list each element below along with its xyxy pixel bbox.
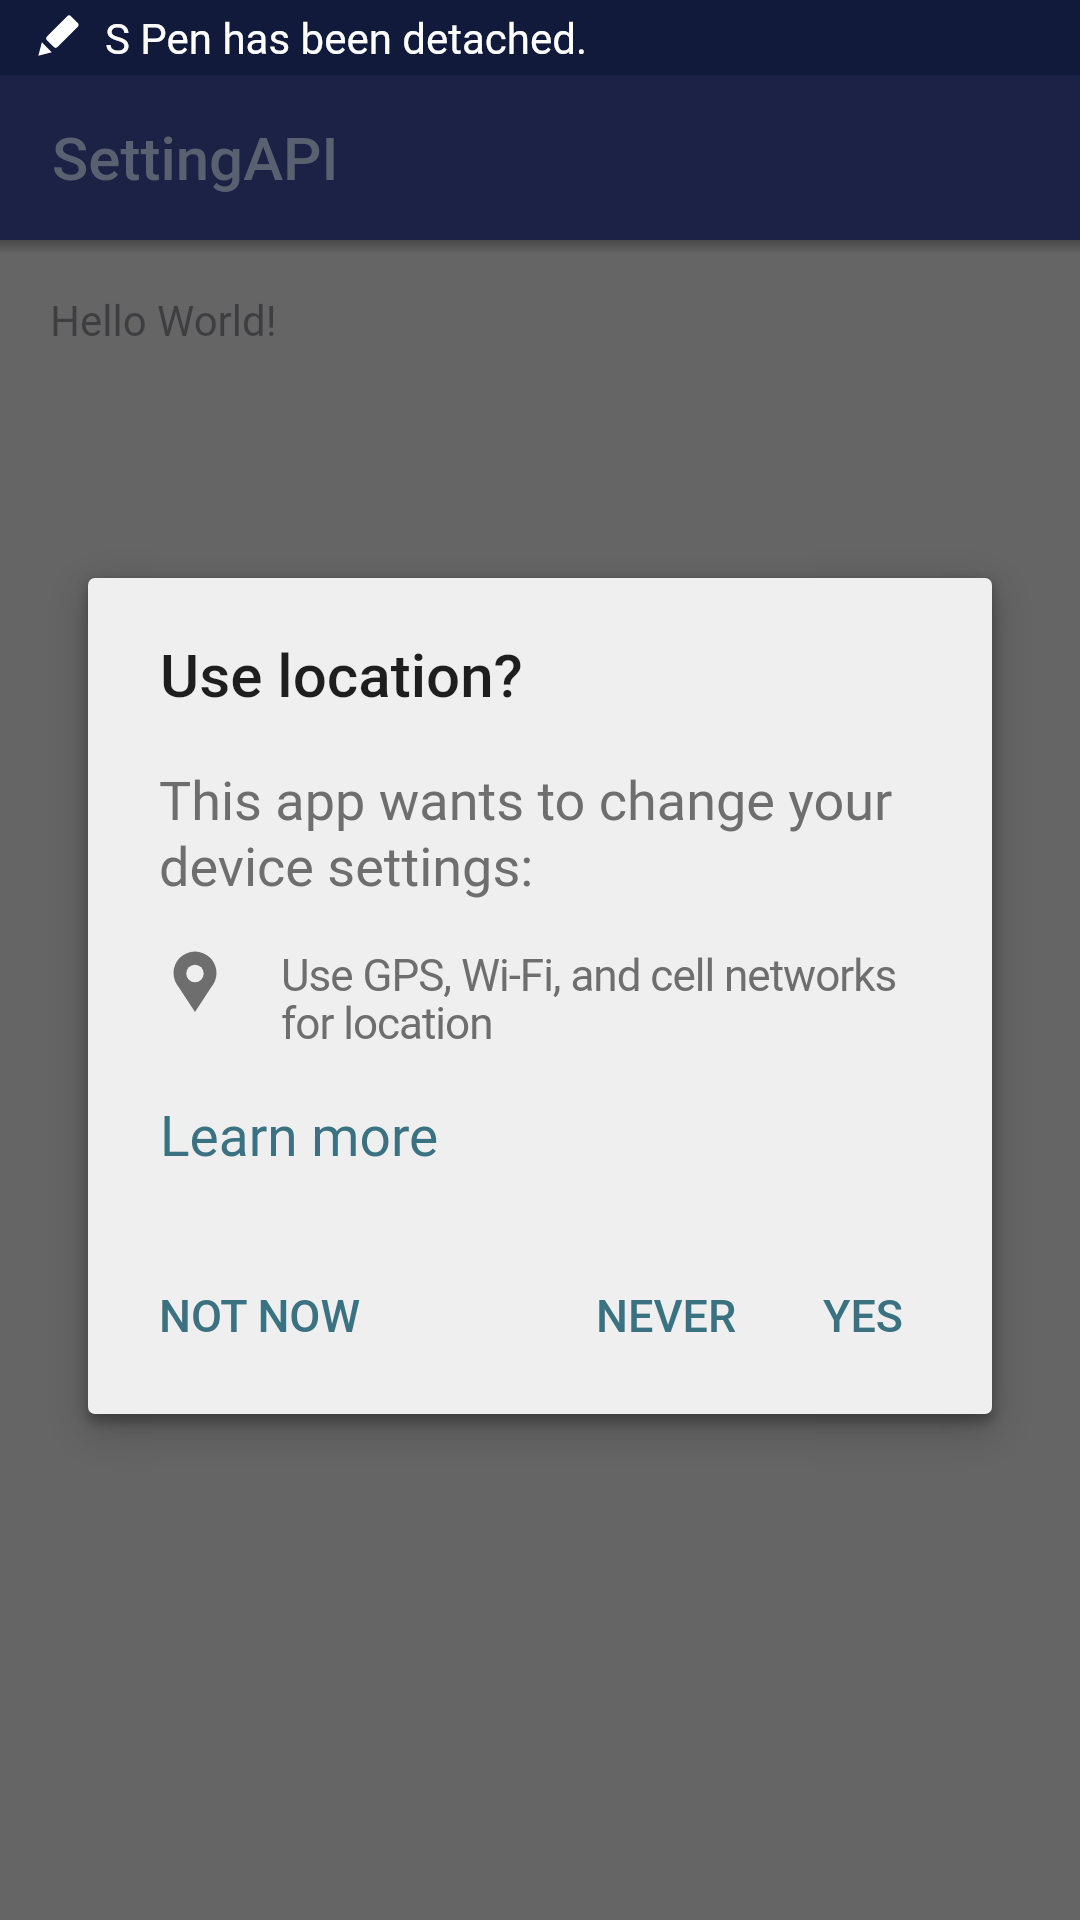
button[interactable]: YES <box>799 1258 968 1366</box>
staticText: NEVER <box>596 1290 737 1343</box>
button[interactable]: NEVER <box>572 1258 792 1366</box>
staticText: SettingAPI <box>52 124 339 194</box>
staticText: Use location? <box>160 641 523 711</box>
staticText: Use GPS, Wi-Fi, and cell networks <box>281 950 897 1002</box>
staticText: NOT NOW <box>159 1290 361 1343</box>
staticText: device settings: <box>159 836 534 899</box>
staticText: This app wants to change your <box>159 770 893 833</box>
staticText: Hello World! <box>50 297 277 346</box>
staticText: Learn more <box>160 1105 439 1169</box>
button[interactable]: NOT NOW <box>135 1258 395 1366</box>
staticText: S Pen has been detached. <box>105 15 587 64</box>
staticText: YES <box>823 1290 904 1343</box>
staticText: for location <box>281 998 493 1050</box>
button[interactable]: Learn more <box>136 1074 415 1138</box>
